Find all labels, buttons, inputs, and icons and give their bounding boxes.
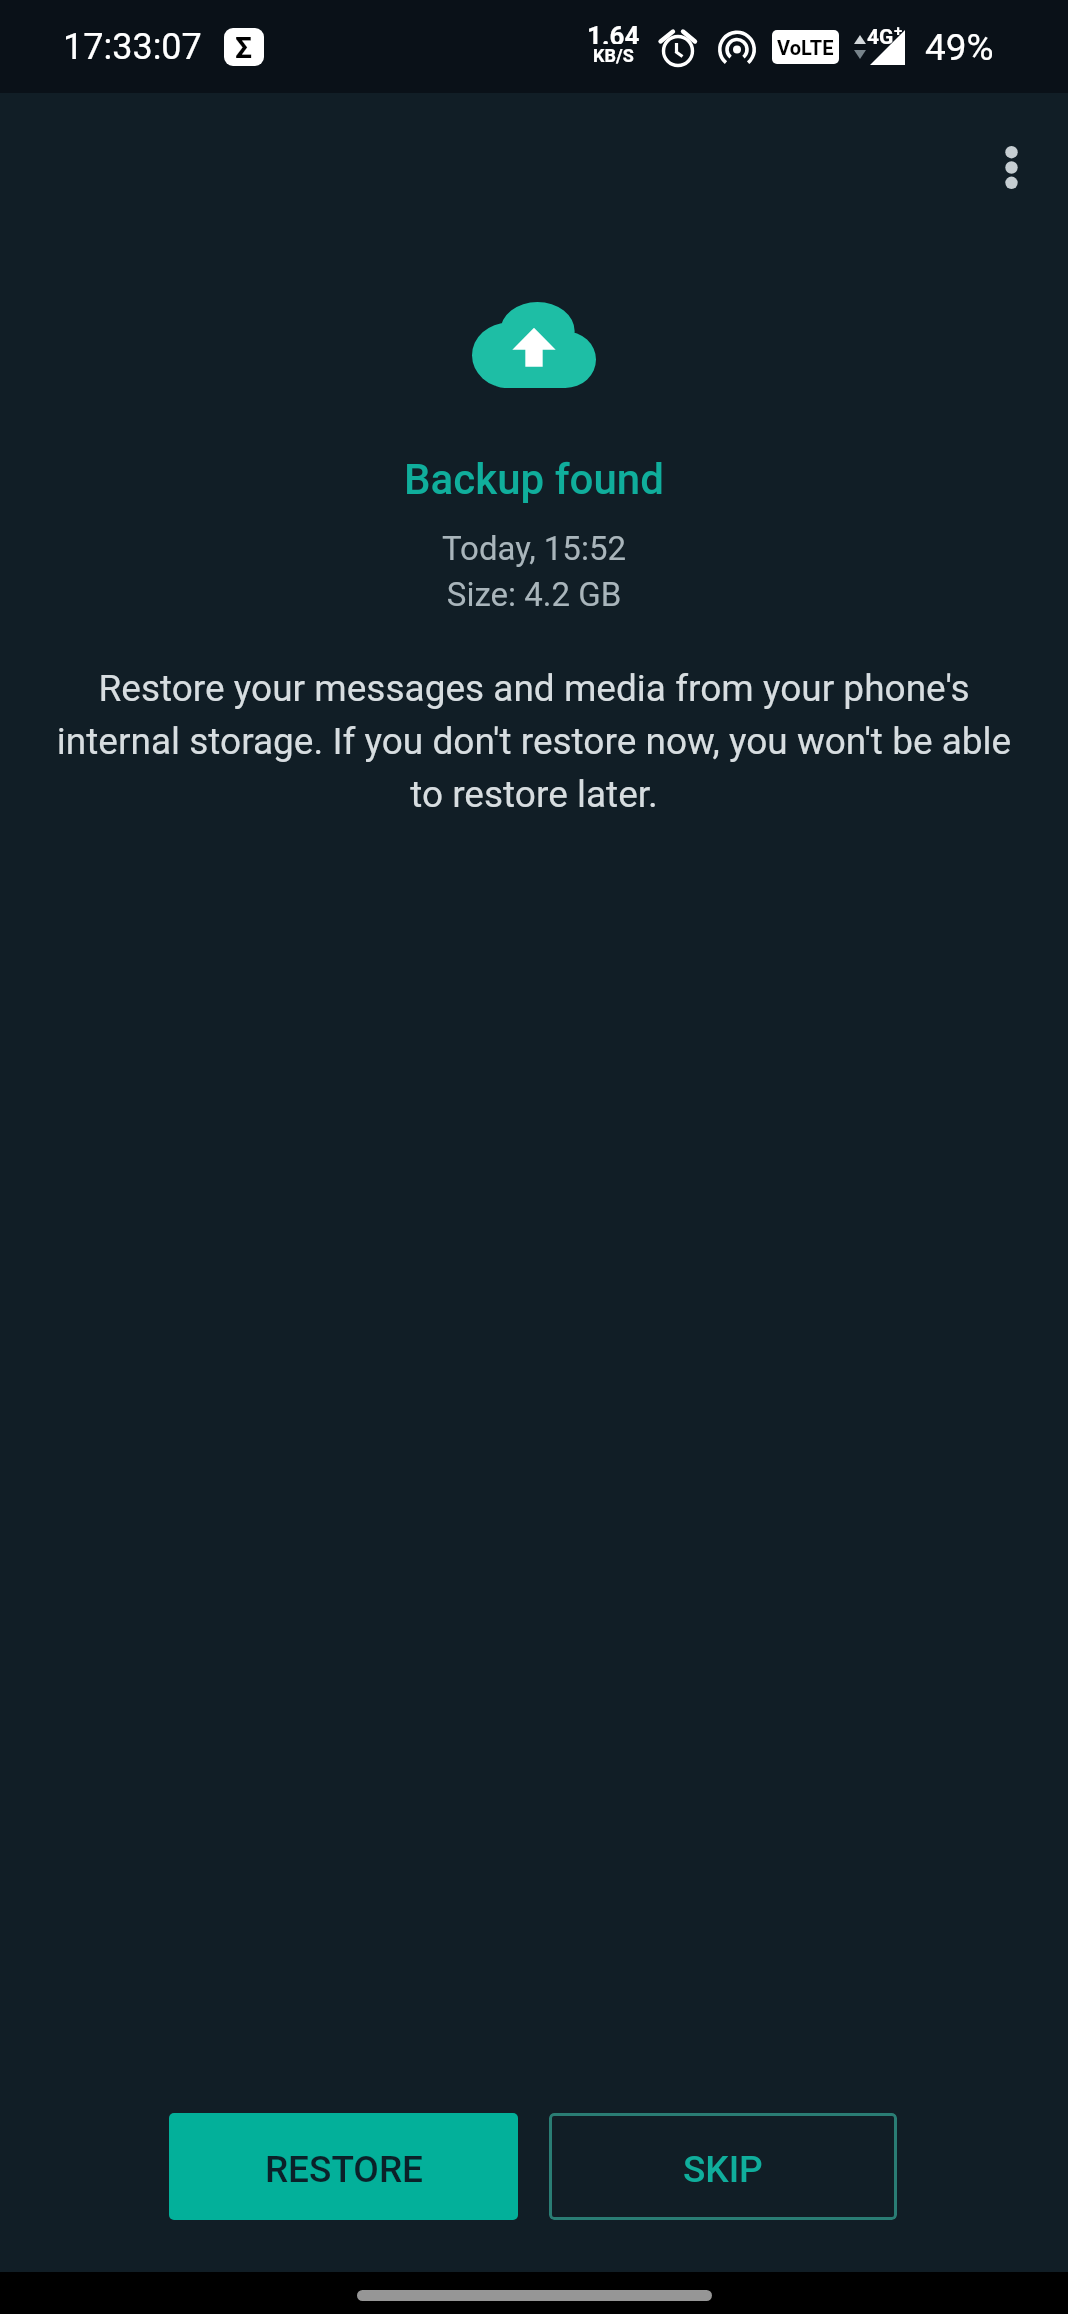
- staticText: 4G: [867, 25, 894, 50]
- staticText: VoLTE: [777, 36, 834, 59]
- button[interactable]: More options: [969, 125, 1053, 209]
- button[interactable]: RESTORE: [169, 2113, 518, 2220]
- staticText: 49%: [925, 26, 994, 69]
- staticText: Today, 15:52 Size: 4.2 GB: [442, 529, 626, 614]
- staticText: SKIP: [683, 2148, 763, 2191]
- staticText: Restore your messages and media from you…: [46, 667, 1022, 816]
- staticText: +: [894, 22, 903, 40]
- staticText: 1.64: [587, 21, 640, 44]
- staticText: RESTORE: [265, 2148, 423, 2191]
- staticText: Backup found: [404, 455, 664, 504]
- staticText: Σ: [235, 30, 253, 65]
- staticText: KB/S: [593, 45, 634, 66]
- button[interactable]: SKIP: [549, 2113, 897, 2220]
- staticText: 17:33:07: [63, 26, 202, 68]
